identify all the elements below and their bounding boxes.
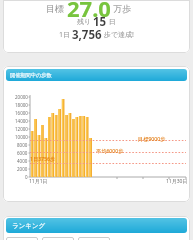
- button[interactable]: 開催期間中の歩数: [3, 66, 190, 202]
- button[interactable]: [42, 237, 74, 240]
- button[interactable]: [6, 237, 38, 240]
- staticText: 15: [93, 14, 107, 30]
- button[interactable]: [78, 237, 110, 240]
- staticText: 目標: [46, 2, 67, 14]
- staticText: 歩で達成!: [102, 30, 134, 40]
- staticText: 日: [107, 17, 116, 27]
- staticText: 1日: [59, 30, 72, 40]
- button[interactable]: ランキング: [3, 216, 190, 240]
- staticText: ランキング: [12, 222, 46, 230]
- staticText: 27.0: [67, 0, 111, 23]
- staticText: 開催期間中の歩数: [10, 72, 52, 79]
- button[interactable]: 目標: [3, 0, 190, 53]
- staticText: 3,756: [72, 27, 102, 43]
- staticText: 万歩: [111, 2, 132, 14]
- staticText: 残り: [77, 17, 93, 27]
